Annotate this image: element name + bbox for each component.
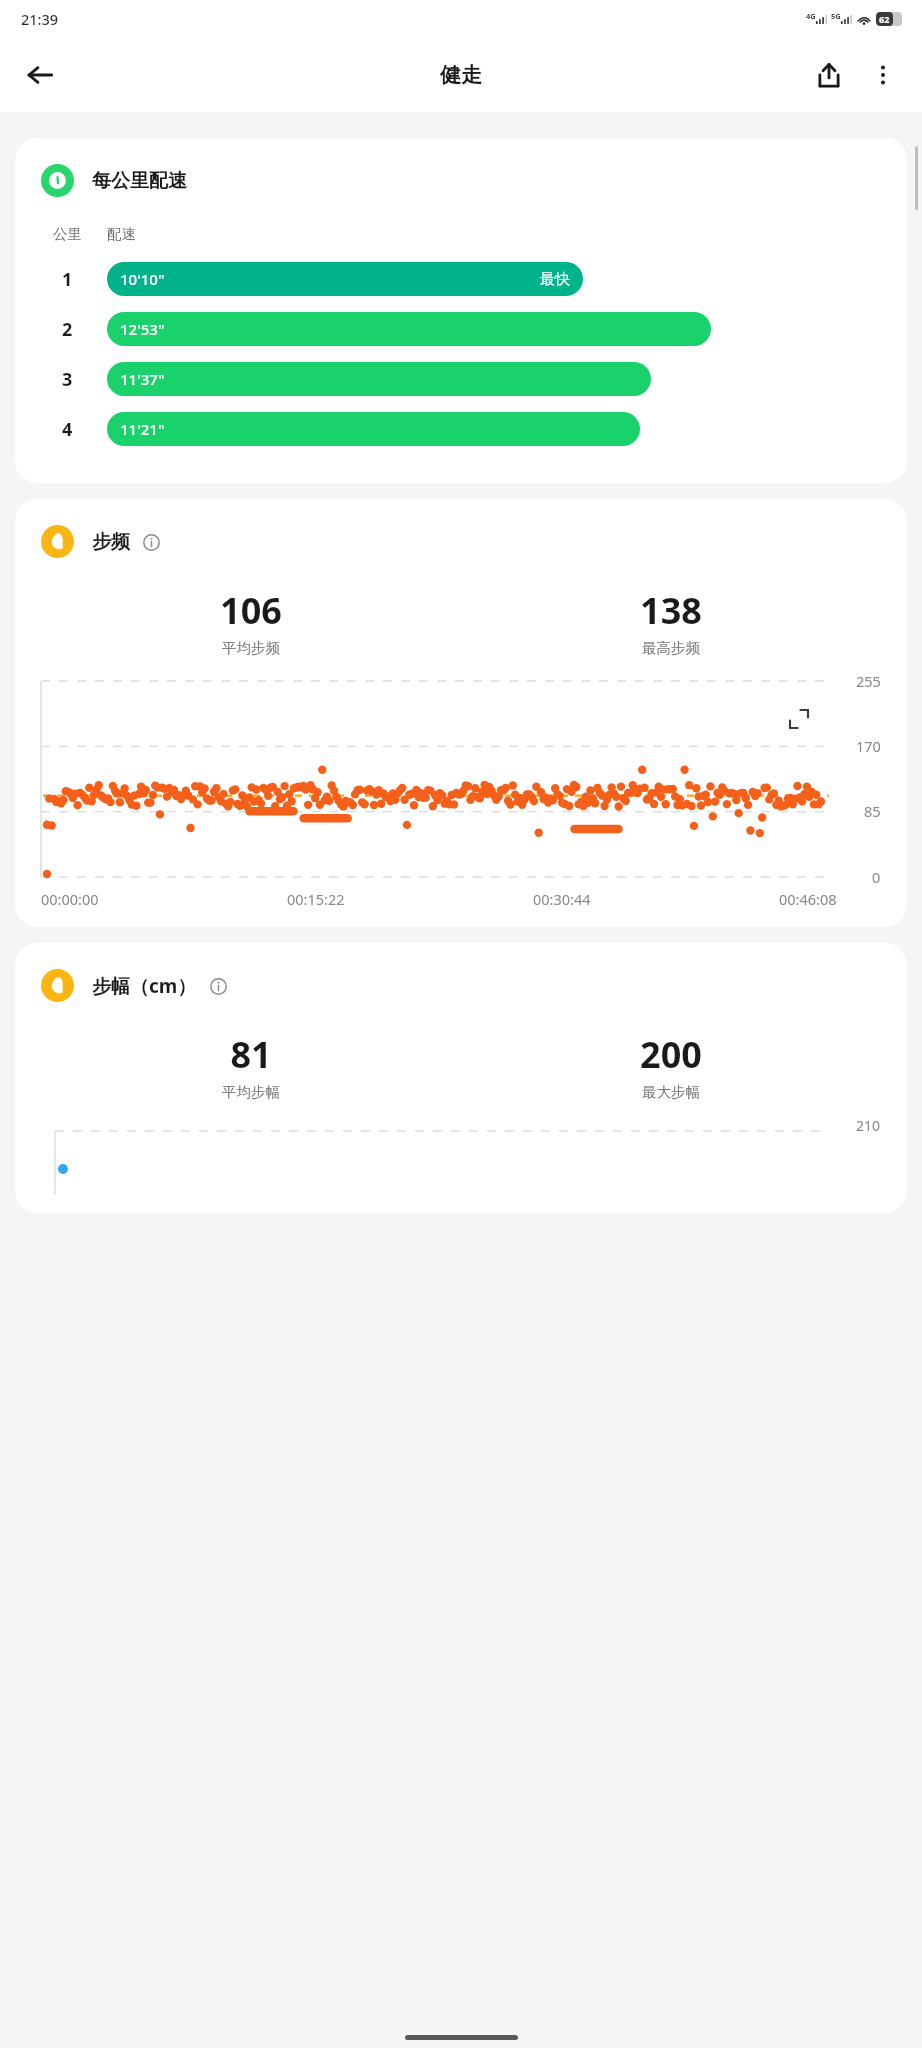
staticText: 健走 [440,62,482,88]
staticText: 12'53" [120,319,165,339]
staticText: 85 [864,801,881,821]
staticText: 210 [856,1116,881,1135]
button[interactable]: 说明 [205,973,231,999]
button[interactable]: 步幅（cm） [15,943,907,1213]
staticText: 11'37" [120,369,165,389]
staticText: 5G [831,11,841,21]
button[interactable]: 全屏查看 [777,697,821,741]
staticText: 170 [856,736,881,756]
staticText: 每公里配速 [92,169,187,193]
staticText: 62 [879,13,890,25]
staticText: 11'21" [120,419,165,439]
staticText: 1 [62,267,73,292]
button[interactable]: 返回 [14,49,66,101]
button[interactable]: 步频 [15,499,907,927]
staticText: 0 [872,867,881,887]
staticText: 00:46:08 [779,889,837,909]
staticText: 公里 [53,225,82,243]
staticText: 00:30:44 [533,889,591,909]
staticText: 00:15:22 [287,889,345,909]
staticText: 4 [62,417,73,442]
staticText: 配速 [107,225,136,243]
staticText: 00:00:00 [41,889,99,909]
staticText: 138 [640,586,702,635]
staticText: 81 [230,1030,272,1079]
staticText: 最快 [540,270,570,289]
staticText: 平均步幅 [222,1083,280,1101]
staticText: 最大步幅 [642,1083,700,1101]
button[interactable]: 分享 [802,48,856,102]
staticText: 步频 [92,530,130,554]
staticText: 步幅（cm） [92,973,197,999]
staticText: 255 [856,671,881,691]
staticText: 106 [220,586,282,635]
button[interactable]: 更多选项 [856,48,910,102]
staticText: 最高步频 [642,639,700,657]
button[interactable]: 每公里配速 [15,138,907,483]
staticText: 2 [62,317,73,342]
staticText: 3 [62,367,73,392]
staticText: 10'10" [120,269,165,289]
staticText: 平均步频 [222,639,280,657]
staticText: 200 [640,1030,702,1079]
staticText: 4G [806,11,816,21]
button[interactable]: 说明 [138,529,164,555]
staticText: 21:39 [21,9,59,29]
